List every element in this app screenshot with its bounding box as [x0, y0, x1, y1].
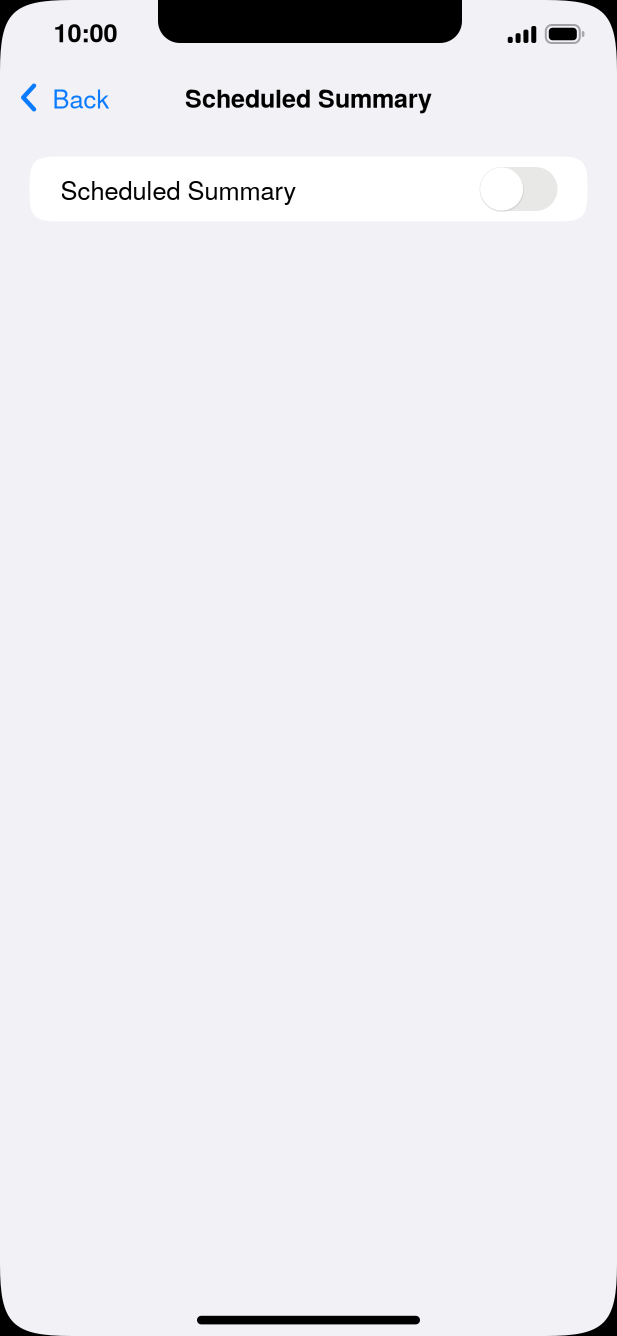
button[interactable]: Scheduled Summary	[479, 167, 557, 211]
staticText: 10:00	[53, 14, 117, 50]
button[interactable]: Scheduled Summary	[29, 156, 587, 221]
staticText: Scheduled Summary	[185, 80, 432, 115]
staticText: Scheduled Summary	[60, 171, 296, 207]
staticText: Back	[52, 79, 109, 116]
button[interactable]: Back	[0, 71, 121, 124]
